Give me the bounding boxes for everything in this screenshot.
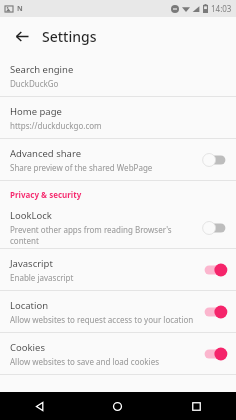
staticText: Prevent other apps from reading Browser'… bbox=[10, 224, 196, 246]
button[interactable]: Cookies bbox=[0, 333, 236, 374]
button[interactable]: Toggle on bbox=[202, 303, 228, 321]
button[interactable]: Toggle on bbox=[202, 345, 228, 363]
button[interactable]: Home bbox=[78, 392, 157, 420]
button[interactable]: Javascript bbox=[0, 249, 236, 290]
staticText: https://duckduckgo.com bbox=[10, 120, 102, 131]
button[interactable]: Toggle off bbox=[202, 151, 228, 169]
button[interactable]: Recent apps bbox=[157, 392, 236, 420]
button[interactable]: Advanced share bbox=[0, 139, 236, 180]
button[interactable]: Home page bbox=[0, 97, 236, 138]
button[interactable]: Location bbox=[0, 291, 236, 332]
staticText: Share preview of the shared WebPage bbox=[10, 162, 153, 173]
staticText: Search engine bbox=[10, 63, 74, 76]
button[interactable]: Back bbox=[0, 392, 78, 420]
staticText: DuckDuckGo bbox=[10, 78, 59, 89]
button[interactable]: LookLock bbox=[0, 207, 236, 248]
button[interactable]: Toggle on bbox=[202, 261, 228, 279]
staticText: Javascript bbox=[10, 257, 53, 270]
staticText: Allow websites to request access to your… bbox=[10, 314, 194, 325]
button[interactable]: Back bbox=[6, 20, 38, 52]
staticText: Allow websites to save and load cookies bbox=[10, 356, 160, 367]
button[interactable]: Search engine bbox=[0, 55, 236, 96]
staticText: Settings bbox=[42, 27, 97, 46]
staticText: 14:03 bbox=[211, 3, 232, 14]
staticText: Home page bbox=[10, 105, 62, 118]
staticText: Cookies bbox=[10, 341, 45, 354]
staticText: Location bbox=[10, 299, 49, 312]
staticText: N bbox=[17, 4, 23, 14]
staticText: LookLock bbox=[10, 209, 52, 222]
button[interactable]: Toggle off bbox=[202, 219, 228, 237]
staticText: Enable javascript bbox=[10, 272, 74, 283]
staticText: Advanced share bbox=[10, 147, 82, 160]
staticText: Privacy & security bbox=[10, 189, 82, 200]
